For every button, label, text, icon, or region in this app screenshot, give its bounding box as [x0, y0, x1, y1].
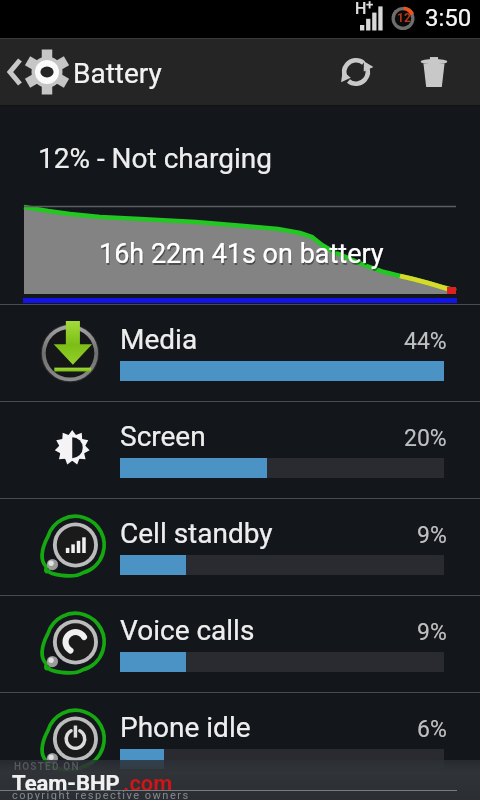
- staticText: 6%: [417, 716, 447, 743]
- button[interactable]: Cell standby: [0, 498, 480, 595]
- staticText: Media: [120, 323, 198, 356]
- staticText: .com: [123, 771, 173, 797]
- staticText: Phone idle: [120, 711, 251, 744]
- other: Navigate up: [4, 46, 70, 98]
- staticText: H: [355, 0, 367, 18]
- staticText: Cell standby: [120, 517, 273, 550]
- button[interactable]: Refresh: [322, 38, 390, 106]
- button[interactable]: Media: [0, 304, 480, 401]
- staticText: 16h 22m 41s on battery: [100, 240, 385, 272]
- staticText: 3:50: [425, 4, 472, 32]
- staticText: 44%: [404, 328, 447, 355]
- staticText: +: [366, 0, 374, 12]
- button[interactable]: Voice calls: [0, 595, 480, 692]
- staticText: 9%: [417, 619, 447, 646]
- staticText: 20%: [404, 425, 447, 452]
- staticText: HOSTED ON: [14, 761, 80, 773]
- button[interactable]: Screen: [0, 401, 480, 498]
- staticText: copyright respective owners: [12, 789, 190, 800]
- staticText: 12: [397, 11, 411, 25]
- staticText: Voice calls: [120, 614, 255, 647]
- staticText: Screen: [120, 420, 206, 453]
- staticText: Battery: [73, 57, 162, 90]
- button[interactable]: Phone idle: [0, 692, 480, 789]
- staticText: 9%: [417, 522, 447, 549]
- staticText: Team-BHP: [12, 771, 120, 797]
- button[interactable]: Delete: [400, 38, 468, 106]
- staticText: 16h 22m 41s on battery: [99, 238, 384, 270]
- button[interactable]: Navigate up: [4, 38, 162, 106]
- staticText: 12% - Not charging: [38, 142, 272, 175]
